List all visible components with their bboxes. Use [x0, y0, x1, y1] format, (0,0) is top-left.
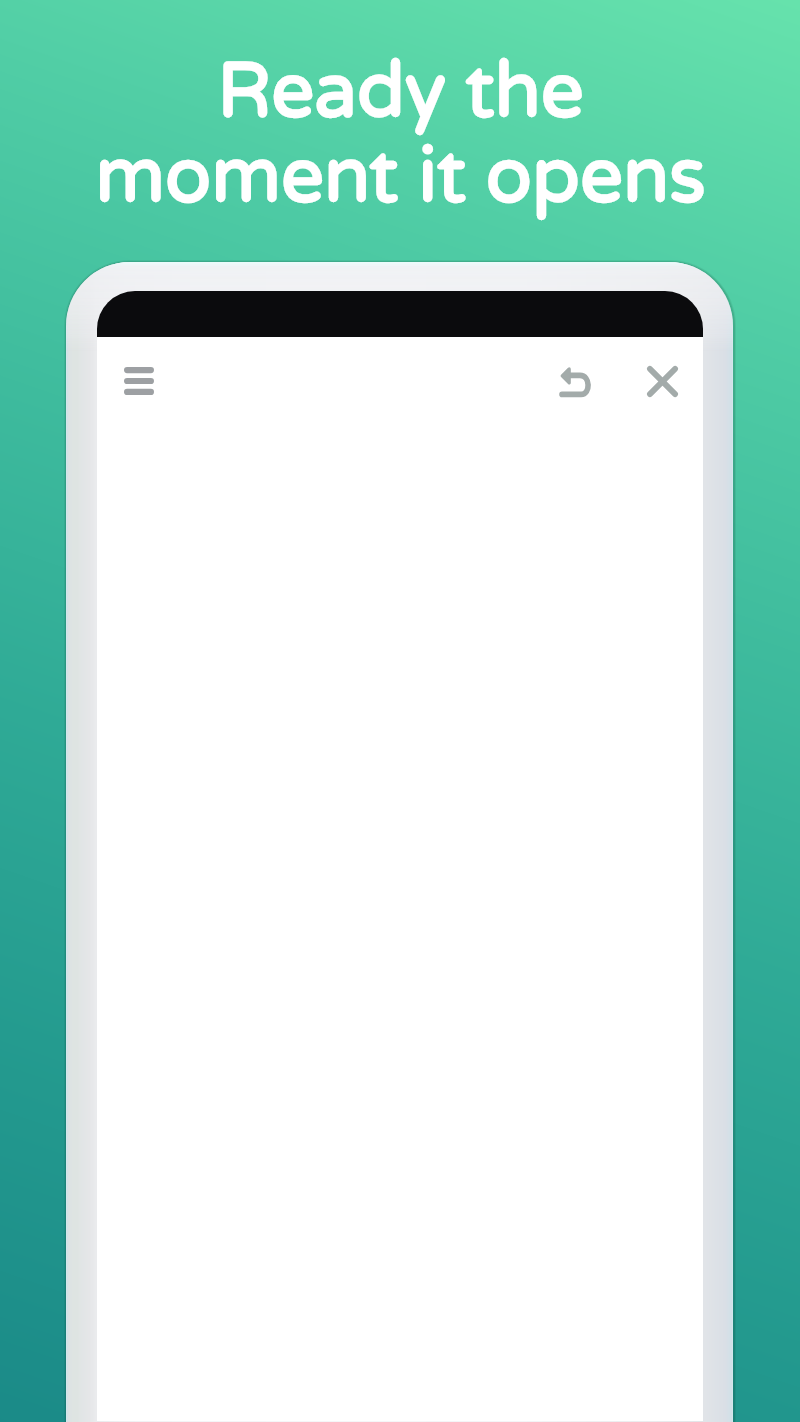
staticText: Ready the	[217, 46, 584, 138]
button[interactable]: Close	[631, 350, 693, 412]
staticText: moment it opens	[95, 131, 706, 223]
button[interactable]: Menu	[108, 350, 170, 412]
button[interactable]: Undo	[543, 351, 605, 413]
